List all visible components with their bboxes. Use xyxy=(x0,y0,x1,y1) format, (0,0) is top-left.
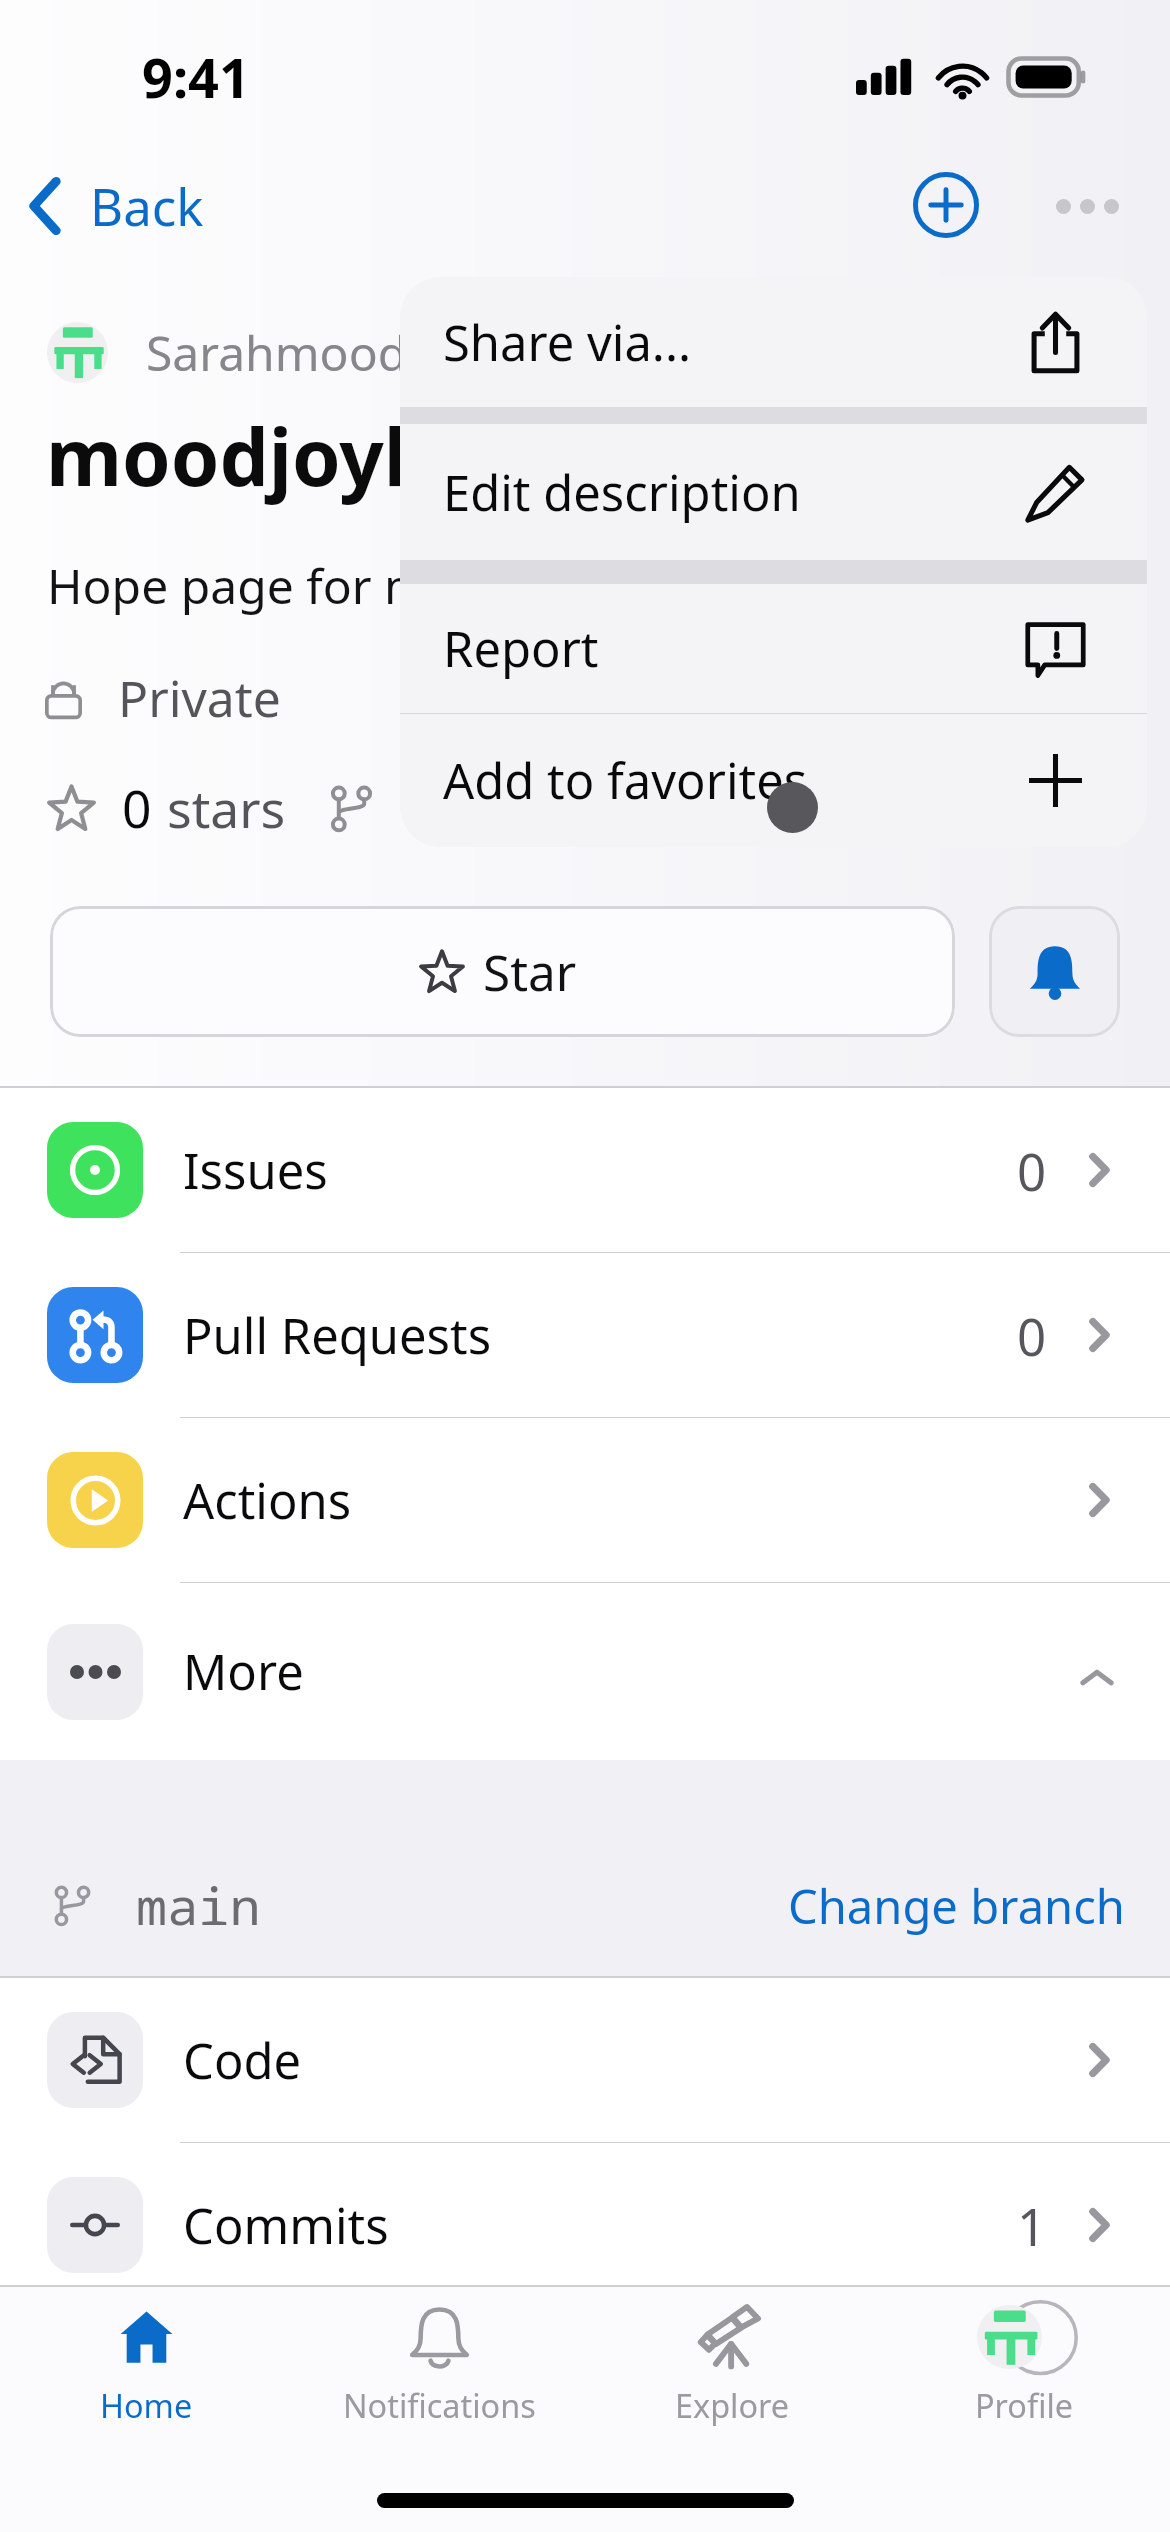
staticText: stars xyxy=(167,773,286,843)
staticText: Sarahmoodev xyxy=(146,320,458,385)
staticText: More xyxy=(183,1638,304,1705)
staticText: 9:41 xyxy=(142,40,250,114)
button[interactable]: Home xyxy=(0,2299,293,2433)
button[interactable]: Star xyxy=(50,906,955,1037)
staticText: Actions xyxy=(183,1467,352,1534)
button[interactable]: Actions xyxy=(0,1418,1170,1582)
staticText: Issues xyxy=(183,1137,328,1204)
button[interactable]: Watch notifications xyxy=(989,906,1120,1037)
staticText: main xyxy=(136,1870,261,1941)
staticText: 0 xyxy=(1017,1301,1047,1370)
staticText: 0 xyxy=(122,773,152,843)
button[interactable]: Pull Requests xyxy=(0,1253,1170,1417)
button[interactable]: Issues xyxy=(0,1088,1170,1252)
staticText: Private xyxy=(118,664,281,732)
button[interactable]: More options xyxy=(1044,167,1131,245)
staticText: Home xyxy=(100,2383,193,2427)
button[interactable]: Create new xyxy=(907,166,985,244)
button[interactable]: Code xyxy=(0,1978,1170,2142)
button[interactable]: Profile xyxy=(879,2299,1170,2433)
staticText: Report xyxy=(443,615,599,682)
staticText: Back xyxy=(90,171,204,240)
staticText: Explore xyxy=(675,2383,790,2427)
staticText: Hope page for moodjoy xyxy=(47,553,582,618)
button[interactable]: Notifications xyxy=(293,2299,586,2433)
button[interactable]: Commits xyxy=(0,2143,1170,2307)
button[interactable]: Back xyxy=(20,156,213,255)
staticText: Add to favorites xyxy=(443,747,808,814)
staticText: Pull Requests xyxy=(183,1302,492,1369)
staticText: 1 xyxy=(1017,2191,1047,2260)
staticText: Code xyxy=(183,2027,302,2094)
staticText: 0 xyxy=(1017,1136,1047,1205)
button[interactable]: Change branch xyxy=(788,1874,1125,1938)
staticText: Profile xyxy=(975,2383,1074,2427)
button[interactable]: Report xyxy=(400,584,1147,713)
staticText: Star xyxy=(483,938,577,1005)
staticText: Notifications xyxy=(343,2383,536,2427)
staticText: moodjoylab xyxy=(46,403,504,509)
button[interactable]: Share via... xyxy=(400,277,1147,407)
staticText: Commits xyxy=(183,2192,389,2259)
staticText: Edit description xyxy=(443,459,801,526)
staticText: Change branch xyxy=(788,1874,1125,1938)
button[interactable]: Edit description xyxy=(400,424,1147,560)
staticText: Share via... xyxy=(443,309,692,376)
button[interactable]: More xyxy=(0,1583,1170,1760)
button[interactable]: Add to favorites xyxy=(400,714,1147,847)
button[interactable]: Explore xyxy=(586,2299,879,2433)
